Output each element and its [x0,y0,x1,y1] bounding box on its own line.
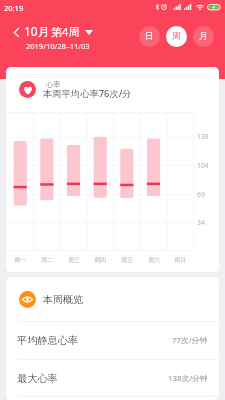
staticText: 20:19 [4,3,24,13]
staticText: 本周平均心率76次/分 [43,87,132,100]
staticText: 本周概览 [43,293,83,306]
staticText: 周六 [148,256,160,264]
button[interactable]: Back [6,22,26,42]
staticText: 34 [197,218,205,227]
staticText: 平均静息心率 [17,334,79,347]
staticText: 周 [172,31,181,42]
button[interactable]: 日 [139,26,160,47]
staticText: 138 [197,132,209,141]
staticText: 最大心率 [17,372,58,385]
staticText: 周日 [174,256,186,264]
staticText: 月 [199,31,208,42]
staticText: 日 [145,31,154,42]
staticText: 周三 [68,256,80,264]
button[interactable]: 最大心率 [6,360,219,397]
staticText: 104 [197,161,209,170]
staticText: 心率 [46,80,61,89]
staticText: 77次/分钟 [172,335,208,346]
staticText: 138次/分钟 [168,373,208,384]
staticText: 第4周 [51,24,80,39]
staticText: 周一 [14,256,26,264]
staticText: 2019/10/28–11/03 [26,41,90,51]
staticText: 10月 [24,23,50,39]
button[interactable]: 周 [166,26,187,47]
staticText: 69 [197,190,205,199]
button[interactable]: 平均静息心率 [6,322,219,359]
staticText: 周四 [94,256,106,264]
staticText: 周五 [121,256,133,264]
button[interactable]: 月 [193,26,214,47]
button[interactable]: 心率 [6,67,219,272]
staticText: 周二 [41,256,53,264]
